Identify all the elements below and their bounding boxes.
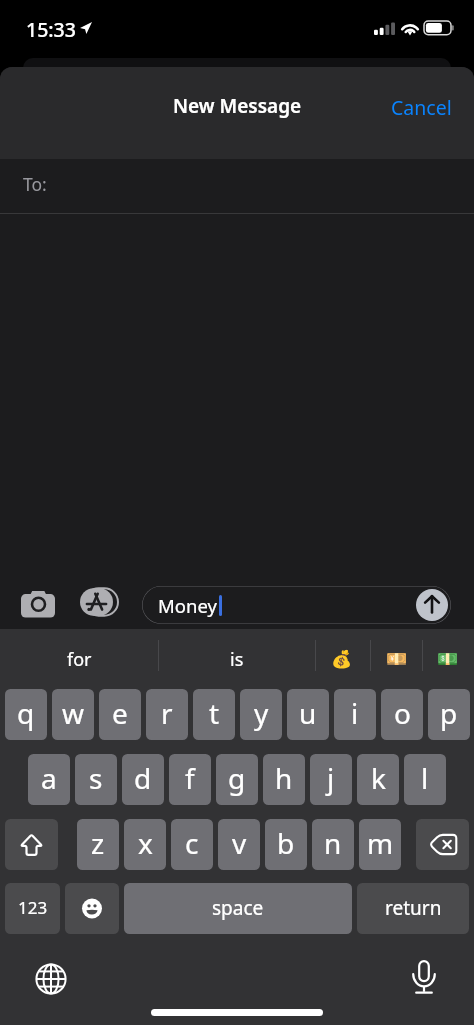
button[interactable]: Next keyboard bbox=[28, 956, 73, 1001]
staticText: x bbox=[138, 824, 153, 862]
staticText: c bbox=[185, 824, 199, 862]
staticText: e bbox=[112, 694, 128, 732]
staticText: 💴 bbox=[386, 649, 408, 669]
button[interactable]: n bbox=[312, 819, 354, 870]
button[interactable]: h bbox=[263, 754, 305, 805]
button[interactable]: p bbox=[428, 689, 470, 740]
staticText: n bbox=[324, 824, 342, 862]
button[interactable]: Dictation bbox=[402, 955, 446, 999]
button[interactable]: Camera bbox=[14, 585, 62, 618]
staticText: h bbox=[275, 759, 293, 797]
staticText: l bbox=[421, 759, 429, 797]
staticText: w bbox=[62, 694, 85, 732]
staticText: j bbox=[327, 759, 335, 797]
button[interactable]: for bbox=[40, 629, 118, 685]
staticText: for bbox=[67, 647, 92, 672]
staticText: t bbox=[209, 694, 220, 732]
staticText: z bbox=[91, 824, 105, 862]
button[interactable]: f bbox=[169, 754, 211, 805]
button[interactable]: e bbox=[99, 689, 141, 740]
staticText: b bbox=[277, 824, 295, 862]
staticText: 123 bbox=[18, 896, 48, 919]
staticText: 💰 bbox=[331, 649, 353, 669]
button[interactable]: 💴 bbox=[371, 629, 423, 685]
button[interactable]: x bbox=[124, 819, 166, 870]
staticText: Cancel bbox=[391, 94, 452, 121]
staticText: 15:33 bbox=[26, 16, 76, 43]
staticText: m bbox=[367, 824, 394, 862]
button[interactable]: Send bbox=[416, 589, 448, 621]
staticText: To: bbox=[23, 172, 47, 196]
button[interactable]: j bbox=[310, 754, 352, 805]
staticText: 💵 bbox=[437, 649, 459, 669]
button[interactable]: Cancel bbox=[369, 84, 474, 131]
button[interactable]: is bbox=[198, 629, 276, 685]
button[interactable]: 💰 bbox=[316, 629, 368, 685]
button[interactable]: g bbox=[216, 754, 258, 805]
button[interactable]: k bbox=[357, 754, 399, 805]
staticText: q bbox=[17, 694, 35, 732]
button[interactable]: Backspace bbox=[416, 819, 469, 870]
staticText: d bbox=[134, 759, 152, 797]
staticText: u bbox=[299, 694, 317, 732]
button[interactable]: o bbox=[381, 689, 423, 740]
button[interactable]: i bbox=[334, 689, 376, 740]
staticText: p bbox=[440, 694, 458, 732]
staticText: k bbox=[371, 759, 386, 797]
button[interactable]: c bbox=[171, 819, 213, 870]
staticText: i bbox=[351, 694, 359, 732]
button[interactable]: r bbox=[146, 689, 188, 740]
button[interactable]: l bbox=[404, 754, 446, 805]
button[interactable]: v bbox=[218, 819, 260, 870]
button[interactable]: Shift bbox=[5, 819, 58, 870]
staticText: a bbox=[41, 759, 57, 797]
button[interactable]: a bbox=[28, 754, 70, 805]
button[interactable]: 123 bbox=[5, 883, 60, 934]
staticText: o bbox=[394, 694, 411, 732]
staticText: is bbox=[230, 647, 244, 672]
staticText: v bbox=[232, 824, 247, 862]
staticText: r bbox=[161, 694, 173, 732]
staticText: s bbox=[89, 759, 103, 797]
button[interactable]: s bbox=[75, 754, 117, 805]
staticText: g bbox=[228, 759, 246, 797]
button[interactable]: return bbox=[357, 883, 469, 934]
staticText: y bbox=[254, 694, 269, 732]
staticText: f bbox=[185, 759, 195, 797]
button[interactable]: Apps bbox=[79, 585, 124, 618]
button[interactable]: 💵 bbox=[422, 629, 474, 685]
button[interactable]: d bbox=[122, 754, 164, 805]
button[interactable]: space bbox=[124, 883, 352, 934]
staticText: New Message bbox=[173, 93, 302, 119]
staticText: return bbox=[385, 895, 442, 921]
button[interactable]: b bbox=[265, 819, 307, 870]
button[interactable]: z bbox=[77, 819, 119, 870]
button[interactable]: m bbox=[359, 819, 401, 870]
button[interactable]: t bbox=[193, 689, 235, 740]
button[interactable]: y bbox=[240, 689, 282, 740]
button[interactable]: Emoji bbox=[65, 883, 119, 934]
button[interactable]: q bbox=[5, 689, 47, 740]
staticText: space bbox=[212, 895, 264, 921]
button[interactable]: w bbox=[52, 689, 94, 740]
button[interactable]: Money bbox=[142, 586, 451, 624]
staticText: Money bbox=[158, 593, 217, 618]
button[interactable]: u bbox=[287, 689, 329, 740]
